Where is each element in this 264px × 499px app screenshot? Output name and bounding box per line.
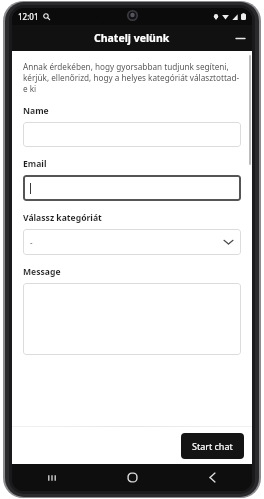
staticText: Annak érdekében, hogy gyorsabban tudjunk… (23, 61, 241, 94)
staticText: Name (23, 105, 49, 117)
button[interactable]: Home (92, 464, 172, 491)
staticText: 12:01 (18, 11, 39, 22)
staticText: Email (23, 158, 47, 170)
staticText: - (30, 237, 33, 248)
staticText: Chatelj velünk (94, 31, 170, 45)
button[interactable]: - (23, 229, 241, 255)
button[interactable]: Start chat (181, 433, 244, 459)
button[interactable]: Back (172, 464, 252, 491)
button[interactable]: Recents (12, 464, 92, 491)
staticText: Message (23, 266, 61, 278)
button[interactable] (23, 175, 241, 201)
staticText: Válassz kategóriát (23, 212, 102, 224)
staticText: Start chat (192, 440, 233, 452)
button[interactable]: Minimize (228, 26, 252, 50)
button[interactable] (23, 122, 241, 147)
button[interactable] (23, 283, 241, 355)
other: Expand category list (224, 239, 233, 245)
